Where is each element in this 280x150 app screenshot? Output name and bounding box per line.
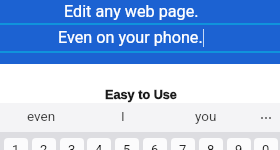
button[interactable]: 4: [87, 138, 111, 150]
button[interactable]: More suggestions: [249, 103, 280, 132]
button[interactable]: 3: [60, 138, 84, 150]
button[interactable]: you: [162, 103, 249, 132]
staticText: 8: [207, 142, 215, 150]
button[interactable]: 7: [171, 138, 195, 150]
staticText: 6: [151, 142, 159, 150]
button[interactable]: 5: [115, 138, 139, 150]
staticText: 7: [179, 142, 187, 150]
button[interactable]: 9: [227, 138, 251, 150]
button[interactable]: 2: [32, 138, 56, 150]
staticText: 5: [123, 142, 131, 150]
button[interactable]: I: [83, 103, 162, 132]
staticText: I: [121, 108, 125, 124]
button[interactable]: Even on your phone.: [0, 25, 280, 51]
staticText: 2: [40, 142, 48, 150]
staticText: 4: [95, 142, 103, 150]
staticText: 0: [262, 142, 270, 150]
staticText: 3: [68, 142, 76, 150]
staticText: you: [195, 108, 217, 124]
staticText: even: [27, 108, 56, 124]
staticText: Even on your phone.: [58, 28, 203, 47]
staticText: 9: [235, 142, 243, 150]
button[interactable]: 8: [199, 138, 223, 150]
staticText: Easy to Use: [105, 88, 177, 102]
button[interactable]: even: [0, 103, 83, 132]
button[interactable]: 6: [143, 138, 167, 150]
staticText: 1: [12, 142, 20, 150]
button[interactable]: 1: [4, 138, 28, 150]
button[interactable]: 0: [254, 138, 278, 150]
staticText: Edit any web page.: [64, 2, 199, 21]
button[interactable]: Edit any web page.: [0, 0, 280, 23]
